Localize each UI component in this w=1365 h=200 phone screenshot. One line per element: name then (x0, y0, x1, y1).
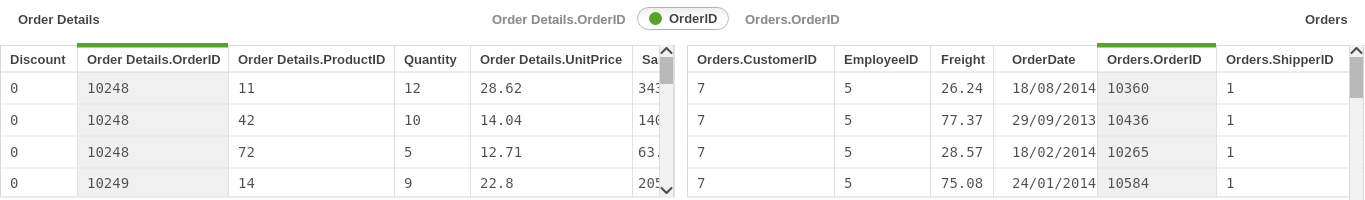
staticText: 0 (10, 80, 19, 96)
staticText: Sales (642, 52, 674, 67)
staticText: Orders.ShipperID (1226, 52, 1334, 67)
staticText: OrderDate (1012, 52, 1076, 67)
staticText: 10248 (87, 112, 130, 128)
staticText: 22.8 (480, 175, 514, 191)
staticText: 0 (10, 112, 19, 128)
staticText: 10360 (1107, 80, 1150, 96)
staticText: 140.4 (638, 112, 674, 128)
staticText: 63.55 (638, 144, 674, 160)
staticText: 10436 (1107, 112, 1150, 128)
staticText: Order Details.UnitPrice (480, 52, 623, 67)
staticText: 205.2 (638, 175, 674, 191)
staticText: 12.71 (480, 144, 523, 160)
staticText: Orders.OrderID (745, 12, 840, 27)
staticText: 11 (238, 80, 255, 96)
staticText: 10584 (1107, 175, 1150, 191)
staticText: 29/09/2013 (1012, 112, 1097, 128)
staticText: 5 (404, 144, 413, 160)
staticText: 7 (697, 112, 706, 128)
staticText: Orders (1305, 12, 1348, 27)
staticText: 10248 (87, 144, 130, 160)
staticText: Quantity (404, 52, 457, 67)
staticText: 12 (404, 80, 421, 96)
staticText: 10248 (87, 80, 130, 96)
staticText: 7 (697, 175, 706, 191)
staticText: 10 (404, 112, 421, 128)
staticText: Order Details (18, 12, 100, 27)
staticText: 1 (1226, 175, 1235, 191)
staticText: 18/08/2014 (1012, 80, 1097, 96)
staticText: Freight (941, 52, 986, 67)
staticText: 10265 (1107, 144, 1150, 160)
staticText: 7 (697, 80, 706, 96)
staticText: 5 (844, 144, 853, 160)
staticText: 7 (697, 144, 706, 160)
staticText: OrderID (669, 11, 718, 26)
staticText: Orders.OrderID (1107, 52, 1202, 67)
staticText: 72 (238, 144, 255, 160)
button[interactable]: OrderID (637, 7, 729, 30)
staticText: EmployeeID (844, 52, 919, 67)
staticText: 1 (1226, 80, 1235, 96)
staticText: 75.08 (941, 175, 984, 191)
staticText: 14 (238, 175, 255, 191)
staticText: Orders.CustomerID (697, 52, 817, 67)
staticText: Order Details.OrderID (492, 12, 626, 27)
staticText: 5 (844, 112, 853, 128)
staticText: 18/02/2014 (1012, 144, 1097, 160)
staticText: 343.44 (638, 80, 674, 96)
staticText: 26.24 (941, 80, 984, 96)
staticText: 5 (844, 175, 853, 191)
staticText: 28.62 (480, 80, 523, 96)
staticText: 14.04 (480, 112, 523, 128)
staticText: 0 (10, 175, 19, 191)
staticText: 42 (238, 112, 255, 128)
staticText: Order Details.OrderID (87, 52, 221, 67)
staticText: 1 (1226, 144, 1235, 160)
staticText: 10249 (87, 175, 130, 191)
staticText: 0 (10, 144, 19, 160)
staticText: Discount (10, 52, 66, 67)
staticText: 24/01/2014 (1012, 175, 1097, 191)
staticText: 77.37 (941, 112, 984, 128)
staticText: 9 (404, 175, 413, 191)
staticText: 5 (844, 80, 853, 96)
staticText: 1 (1226, 112, 1235, 128)
staticText: Order Details.ProductID (238, 52, 386, 67)
staticText: 28.57 (941, 144, 984, 160)
